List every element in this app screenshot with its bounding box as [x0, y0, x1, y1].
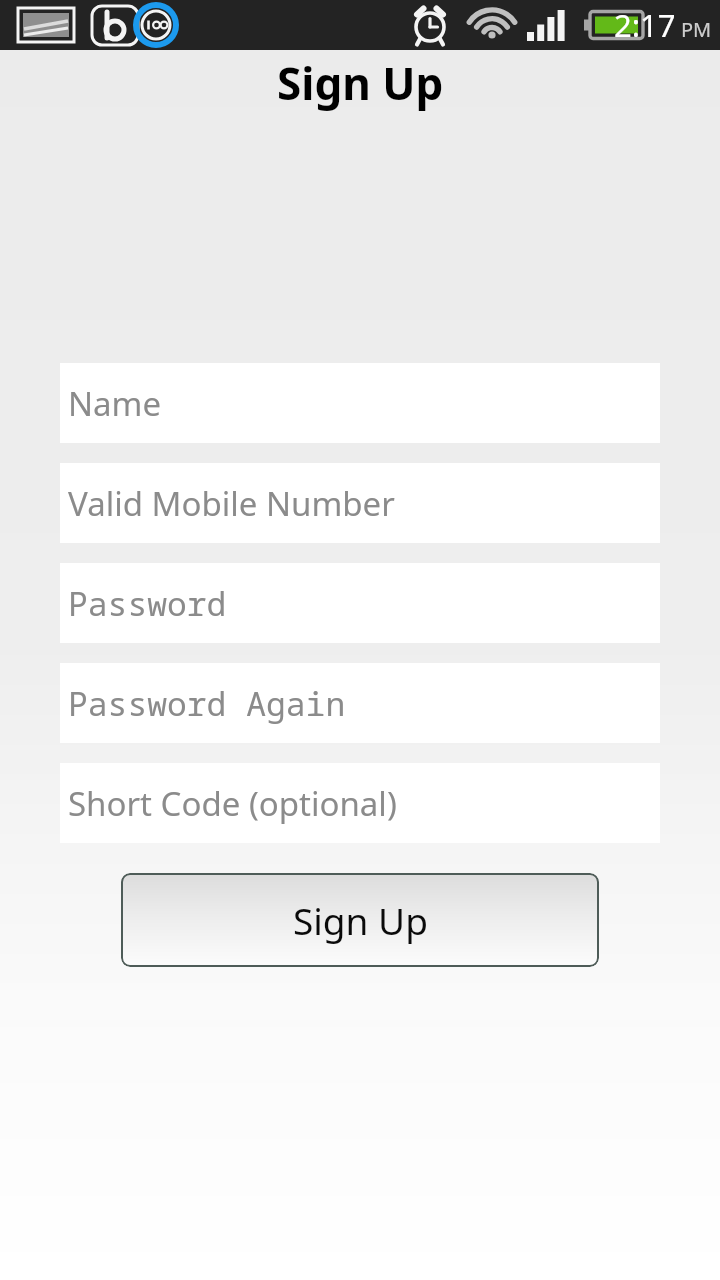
- staticText: PM: [681, 16, 712, 43]
- staticText: Short Code (optional): [68, 781, 397, 826]
- staticText: Valid Mobile Number: [68, 481, 395, 526]
- staticText: Sign Up: [277, 53, 444, 113]
- button[interactable]: Name: [60, 363, 660, 443]
- staticText: 2:17: [614, 4, 676, 46]
- staticText: Password Again: [68, 681, 346, 726]
- button[interactable]: Sign Up: [121, 873, 599, 967]
- staticText: Name: [68, 381, 162, 426]
- staticText: Password: [68, 581, 227, 626]
- staticText: Sign Up: [293, 895, 428, 945]
- button[interactable]: Password Again: [60, 663, 660, 743]
- button[interactable]: Password: [60, 563, 660, 643]
- button[interactable]: Valid Mobile Number: [60, 463, 660, 543]
- other: Status bar: [0, 0, 720, 50]
- button[interactable]: Short Code (optional): [60, 763, 660, 843]
